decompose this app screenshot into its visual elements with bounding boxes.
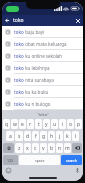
button[interactable]: a — [6, 131, 14, 141]
button[interactable]: z — [15, 143, 23, 153]
staticText: toko — [14, 41, 24, 47]
button[interactable]: Shift — [3, 143, 14, 153]
staticText: ku online sekolah — [24, 53, 63, 59]
button[interactable]: y — [43, 119, 50, 129]
button[interactable]: v — [40, 143, 47, 153]
button[interactable]: Clear — [72, 15, 83, 26]
staticText: j — [59, 133, 61, 140]
button[interactable]: b — [48, 143, 55, 153]
staticText: x — [26, 145, 29, 152]
staticText: toko — [13, 17, 72, 24]
button[interactable]: search — [61, 155, 82, 165]
staticText: toko — [14, 29, 24, 35]
button[interactable]: toko — [2, 86, 83, 98]
button[interactable]: e — [19, 119, 26, 129]
staticText: "toko" — [37, 112, 49, 117]
staticText: q — [5, 121, 9, 128]
button[interactable]: c — [32, 143, 39, 153]
staticText: t — [38, 121, 40, 128]
button[interactable]: toko — [2, 50, 83, 62]
staticText: toko — [14, 77, 24, 83]
staticText: c — [34, 145, 37, 152]
staticText: f — [35, 133, 37, 140]
button[interactable]: t — [35, 119, 42, 129]
staticText: y — [45, 121, 48, 128]
button[interactable]: h — [48, 131, 55, 141]
button[interactable]: x — [24, 143, 31, 153]
staticText: b — [50, 145, 54, 152]
staticText: baju bayi — [24, 29, 45, 35]
staticText: p — [77, 121, 81, 128]
button[interactable]: s — [15, 131, 23, 141]
staticText: w — [13, 121, 17, 128]
button[interactable]: space — [19, 155, 60, 165]
button[interactable]: Dictate — [74, 167, 80, 173]
staticText: v — [42, 145, 45, 152]
button[interactable]: i — [59, 119, 66, 129]
button[interactable]: w — [11, 119, 18, 129]
staticText: ku lebihnya — [24, 65, 50, 71]
staticText: obat mata keluarga — [24, 41, 67, 47]
button[interactable]: Backspace — [72, 143, 82, 153]
staticText: r — [29, 121, 32, 128]
button[interactable]: Back — [2, 15, 13, 26]
staticText: o — [69, 121, 73, 128]
button[interactable]: q — [3, 119, 10, 129]
button[interactable]: toko — [2, 26, 83, 38]
staticText: search — [66, 158, 77, 163]
staticText: k — [66, 133, 69, 140]
button[interactable]: j — [56, 131, 63, 141]
button[interactable]: r — [27, 119, 34, 129]
staticText: nita surabaya — [24, 77, 54, 83]
button[interactable]: k — [64, 131, 71, 141]
button[interactable]: toko — [2, 38, 83, 50]
staticText: a — [9, 133, 12, 140]
button[interactable]: u — [51, 119, 58, 129]
staticText: ku ka buku — [24, 89, 49, 95]
staticText: n — [58, 145, 62, 152]
button[interactable]: n — [56, 143, 63, 153]
button[interactable]: 123 — [3, 155, 18, 165]
staticText: toko — [14, 101, 24, 107]
button[interactable]: l — [72, 131, 79, 141]
button[interactable]: f — [32, 131, 39, 141]
staticText: toko — [14, 89, 24, 95]
staticText: z — [18, 145, 21, 152]
button[interactable]: o — [67, 119, 74, 129]
staticText: g — [42, 133, 46, 140]
staticText: h — [50, 133, 54, 140]
staticText: e — [21, 121, 24, 128]
staticText: l — [75, 133, 77, 140]
staticText: m — [65, 145, 70, 152]
button[interactable]: m — [64, 143, 71, 153]
button[interactable]: toko — [2, 62, 83, 74]
staticText: d — [26, 133, 30, 140]
button[interactable]: g — [40, 131, 47, 141]
staticText: i — [62, 121, 64, 128]
staticText: toko — [14, 65, 24, 71]
staticText: ku n bulogo — [24, 101, 51, 107]
button[interactable]: Emoji — [5, 167, 11, 173]
button[interactable]: d — [24, 131, 31, 141]
button[interactable]: toko — [2, 98, 83, 110]
staticText: u — [53, 121, 57, 128]
staticText: space — [35, 158, 45, 163]
staticText: 123 — [7, 158, 14, 163]
button[interactable]: p — [75, 119, 82, 129]
staticText: toko — [14, 53, 24, 59]
button[interactable]: toko — [2, 74, 83, 86]
staticText: s — [18, 133, 21, 140]
